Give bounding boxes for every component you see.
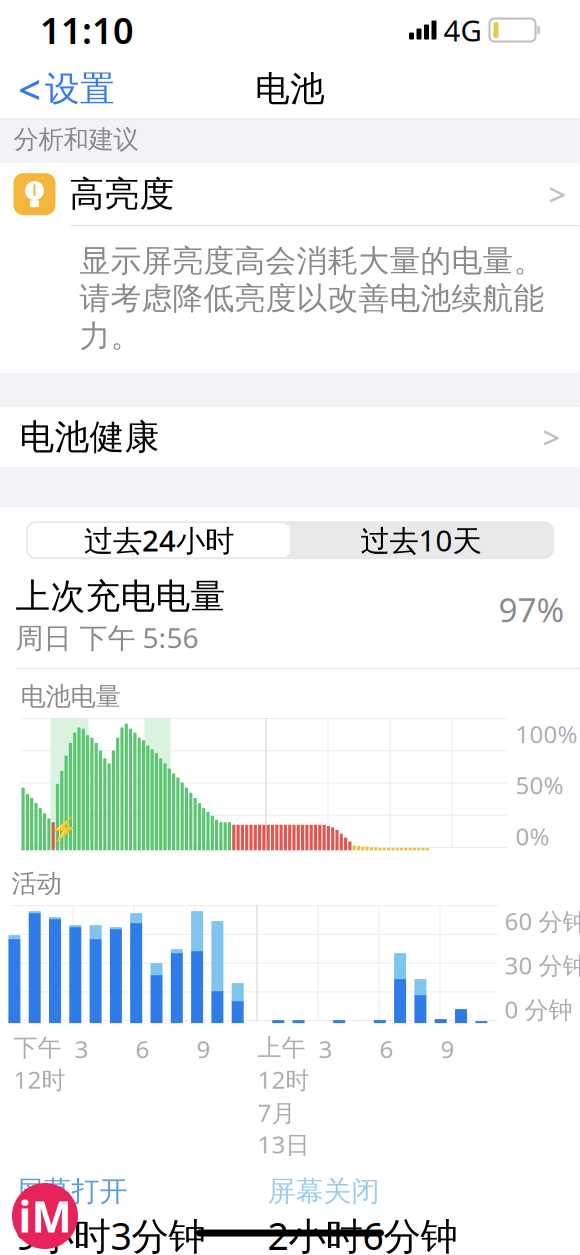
- staticText: 显示屏亮度高会消耗大量的电量。请考虑降低亮度以改善电池续航能力。: [79, 242, 544, 355]
- staticText: 9小时3分钟: [15, 1211, 205, 1255]
- staticText: 4G: [443, 10, 481, 49]
- staticText: iM: [18, 1188, 71, 1244]
- staticText: 7月13日: [257, 1096, 309, 1160]
- button[interactable]: 电池健康: [0, 407, 580, 467]
- staticText: 50%: [515, 769, 563, 801]
- staticText: 屏幕关闭: [267, 1174, 379, 1209]
- staticText: 周日 下午 5:56: [15, 619, 198, 656]
- staticText: ⚡: [49, 816, 77, 842]
- staticText: 9: [440, 1033, 454, 1065]
- staticText: 60 分钟: [504, 905, 580, 937]
- staticText: 0%: [515, 820, 549, 852]
- staticText: 屏幕打开: [15, 1174, 127, 1209]
- staticText: 3: [74, 1033, 88, 1065]
- staticText: 12时: [13, 1064, 65, 1095]
- staticText: 97%: [498, 587, 564, 631]
- staticText: 6: [135, 1033, 149, 1065]
- staticText: 6: [379, 1033, 393, 1065]
- staticText: 电池电量: [20, 681, 120, 712]
- button[interactable]: 过去24小时: [28, 523, 290, 557]
- staticText: 过去10天: [360, 521, 481, 560]
- staticText: <: [18, 62, 41, 115]
- staticText: 分析和建议: [13, 124, 138, 155]
- staticText: 活动: [11, 868, 61, 899]
- staticText: 12时: [257, 1064, 309, 1095]
- staticText: 11:10: [40, 6, 134, 54]
- staticText: 高亮度: [69, 173, 174, 215]
- staticText: >: [548, 174, 566, 214]
- staticText: 过去24小时: [84, 521, 234, 560]
- staticText: 上午: [257, 1033, 305, 1063]
- staticText: 3: [318, 1033, 332, 1065]
- button[interactable]: 高亮度: [0, 163, 580, 225]
- button[interactable]: 屏幕打开: [15, 1174, 205, 1255]
- staticText: 9: [196, 1033, 210, 1065]
- staticText: 100%: [515, 718, 577, 750]
- staticText: 电池健康: [19, 416, 159, 458]
- staticText: >: [542, 417, 560, 457]
- button[interactable]: 屏幕关闭: [267, 1174, 457, 1255]
- button[interactable]: <: [0, 54, 115, 123]
- staticText: 电池: [255, 68, 325, 110]
- staticText: 0 分钟: [504, 993, 572, 1025]
- staticText: 上次充电电量: [15, 575, 225, 618]
- staticText: 30 分钟: [504, 949, 580, 981]
- staticText: 下午: [13, 1033, 61, 1063]
- staticText: 2小时6分钟: [267, 1211, 457, 1255]
- staticText: 设置: [45, 68, 115, 110]
- button[interactable]: 过去10天: [290, 523, 552, 557]
